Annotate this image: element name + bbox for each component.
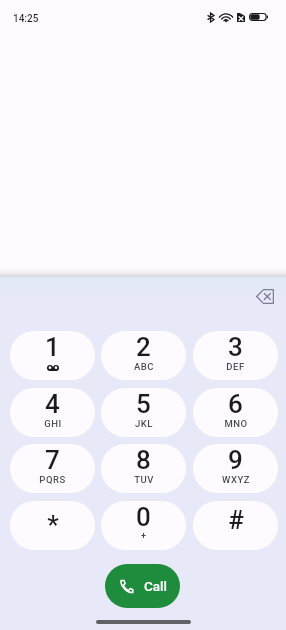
button[interactable]: 7 (10, 444, 95, 493)
button[interactable]: 4 (10, 388, 95, 437)
staticText: GHI (44, 418, 62, 429)
staticText: 14:25 (13, 13, 39, 25)
button[interactable]: 2 (101, 331, 186, 380)
staticText: 3 (228, 332, 243, 362)
button[interactable]: 6 (193, 388, 278, 437)
staticText: 9 (228, 445, 243, 475)
staticText: ABC (134, 361, 154, 372)
staticText: Call (144, 578, 167, 594)
staticText: DEF (226, 361, 245, 372)
staticText: 4 (45, 389, 60, 419)
button[interactable]: 3 (193, 331, 278, 380)
staticText: 7 (45, 445, 60, 475)
button[interactable]: 5 (101, 388, 186, 437)
button[interactable]: Backspace (246, 278, 283, 315)
staticText: 1 (45, 332, 60, 362)
button[interactable]: Call (105, 564, 180, 608)
staticText: 6 (228, 389, 243, 419)
staticText: # (228, 505, 244, 535)
staticText: PQRS (39, 474, 66, 485)
staticText: + (141, 531, 146, 542)
staticText: 8 (136, 445, 151, 475)
staticText: 2 (136, 332, 151, 362)
button[interactable]: 8 (101, 444, 186, 493)
staticText: JKL (135, 418, 153, 429)
staticText: * (47, 510, 59, 540)
staticText: 5 (136, 389, 151, 419)
staticText: MNO (224, 418, 248, 429)
staticText: WXYZ (222, 474, 250, 485)
button[interactable]: # (193, 501, 278, 550)
button[interactable]: 1 (10, 331, 95, 380)
staticText: 0 (136, 502, 151, 532)
button[interactable]: 0 (101, 501, 186, 550)
staticText: TUV (134, 474, 154, 485)
button[interactable]: * (10, 501, 95, 550)
button[interactable]: 9 (193, 444, 278, 493)
